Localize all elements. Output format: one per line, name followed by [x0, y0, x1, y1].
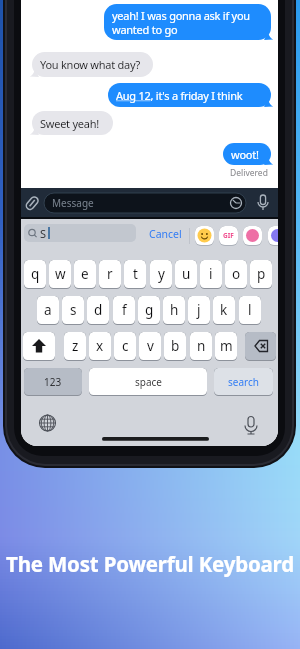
staticText: Aug 12, it's a friday I think — [116, 88, 243, 103]
button[interactable]: y — [150, 260, 172, 289]
staticText: You know what day? — [40, 57, 141, 72]
staticText: b — [171, 337, 180, 355]
staticText: e — [81, 265, 89, 283]
button[interactable] — [195, 226, 214, 246]
button[interactable]: f — [113, 296, 135, 325]
staticText: j — [197, 301, 201, 319]
button[interactable]: z — [64, 332, 86, 361]
button[interactable]: h — [163, 296, 185, 325]
button[interactable]: r — [99, 260, 121, 289]
button[interactable]: s — [62, 296, 84, 325]
button[interactable]: Aug 12, it's a friday I think — [108, 83, 271, 107]
staticText: u — [182, 265, 191, 283]
button[interactable]: q — [24, 260, 46, 289]
button[interactable]: GIF — [219, 226, 238, 246]
staticText: g — [145, 301, 154, 319]
button[interactable]: w — [49, 260, 71, 289]
button[interactable]: You know what day? — [32, 52, 153, 77]
button[interactable]: space — [89, 368, 207, 396]
button[interactable]: m — [215, 332, 237, 361]
button[interactable]: a — [37, 296, 59, 325]
staticText: q — [31, 265, 40, 283]
staticText: h — [170, 301, 179, 319]
button[interactable] — [243, 226, 262, 246]
staticText: z — [72, 337, 79, 355]
staticText: 123 — [44, 375, 62, 389]
button[interactable]: d — [87, 296, 109, 325]
staticText: woot! — [231, 147, 259, 162]
staticText: w — [55, 265, 66, 283]
staticText: r — [107, 265, 113, 283]
staticText: m — [220, 337, 233, 355]
staticText: x — [96, 337, 104, 355]
button[interactable]: Message — [44, 193, 246, 213]
staticText: y — [158, 265, 165, 283]
staticText: Cancel — [149, 227, 182, 241]
button[interactable]: o — [225, 260, 247, 289]
staticText: p — [257, 265, 266, 283]
button[interactable]: search — [214, 368, 273, 396]
button[interactable]: Sweet yeah! — [32, 111, 113, 135]
button[interactable] — [268, 226, 278, 246]
button[interactable]: 123 — [24, 368, 82, 396]
button[interactable]: g — [138, 296, 160, 325]
button[interactable] — [245, 332, 276, 361]
button[interactable]: n — [190, 332, 212, 361]
staticText: GIF — [223, 231, 234, 240]
staticText: The Most Powerful Keyboard — [0, 550, 300, 578]
button[interactable]: c — [114, 332, 136, 361]
button[interactable]: e — [74, 260, 96, 289]
staticText: Sweet yeah! — [40, 116, 99, 131]
button[interactable]: l — [239, 296, 261, 325]
staticText: l — [248, 301, 252, 319]
staticText: k — [220, 301, 228, 319]
staticText: i — [209, 265, 213, 283]
button[interactable]: Cancel — [144, 226, 186, 241]
button[interactable]: p — [250, 260, 272, 289]
staticText: S — [40, 226, 47, 241]
button[interactable]: t — [124, 260, 146, 289]
button[interactable]: S — [24, 224, 136, 242]
staticText: n — [197, 337, 206, 355]
button[interactable]: woot! — [223, 143, 271, 165]
button[interactable]: j — [188, 296, 210, 325]
staticText: yeah! I was gonna ask if you wanted to g… — [112, 8, 250, 37]
staticText: t — [133, 265, 138, 283]
button[interactable]: u — [175, 260, 197, 289]
staticText: o — [232, 265, 241, 283]
staticText: d — [94, 301, 103, 319]
button[interactable]: i — [200, 260, 222, 289]
staticText: search — [228, 375, 259, 389]
staticText: space — [135, 375, 162, 389]
button[interactable]: x — [89, 332, 111, 361]
staticText: f — [122, 301, 127, 319]
staticText: a — [44, 301, 52, 319]
staticText: Delivered — [230, 167, 268, 179]
staticText: c — [122, 337, 129, 355]
button[interactable]: v — [139, 332, 161, 361]
button[interactable]: b — [164, 332, 186, 361]
button[interactable] — [23, 332, 55, 361]
staticText: Message — [52, 196, 94, 210]
button[interactable]: k — [213, 296, 235, 325]
staticText: v — [147, 337, 154, 355]
button[interactable]: yeah! I was gonna ask if you wanted to g… — [104, 4, 271, 40]
staticText: s — [70, 301, 77, 319]
